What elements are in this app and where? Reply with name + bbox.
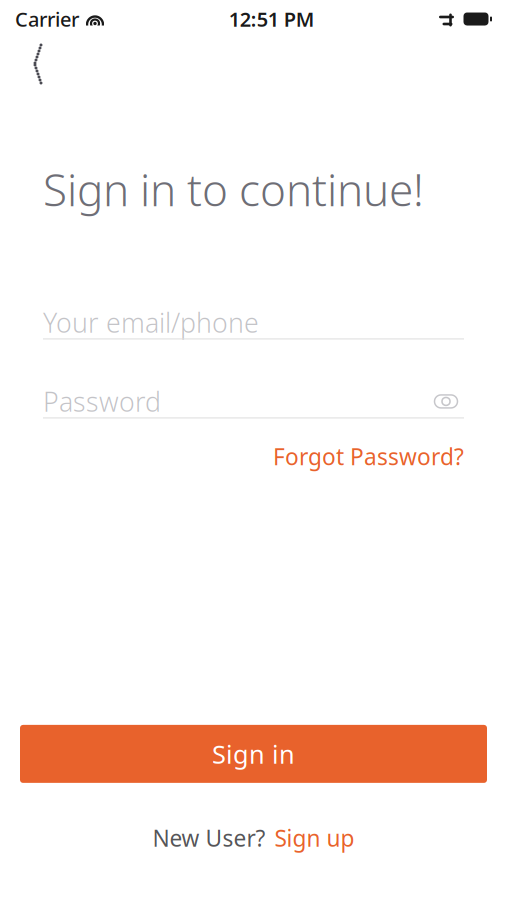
staticText: Your email/phone (43, 305, 259, 340)
staticText: Carrier (15, 6, 79, 32)
staticText: Sign up (274, 823, 354, 853)
staticText: Forgot Password? (273, 441, 464, 471)
staticText: Sign in (212, 737, 295, 771)
staticText: Password (43, 384, 161, 419)
button[interactable]: Sign up (274, 818, 354, 858)
button[interactable]: Forgot Password? (273, 436, 464, 476)
button[interactable]: Back (10, 42, 60, 86)
staticText: 12:51 PM (229, 6, 315, 32)
staticText: Sign in to continue! (43, 160, 424, 218)
staticText: New User? (152, 823, 265, 853)
button[interactable]: Show password (428, 385, 464, 417)
button[interactable]: Sign in (20, 725, 487, 783)
